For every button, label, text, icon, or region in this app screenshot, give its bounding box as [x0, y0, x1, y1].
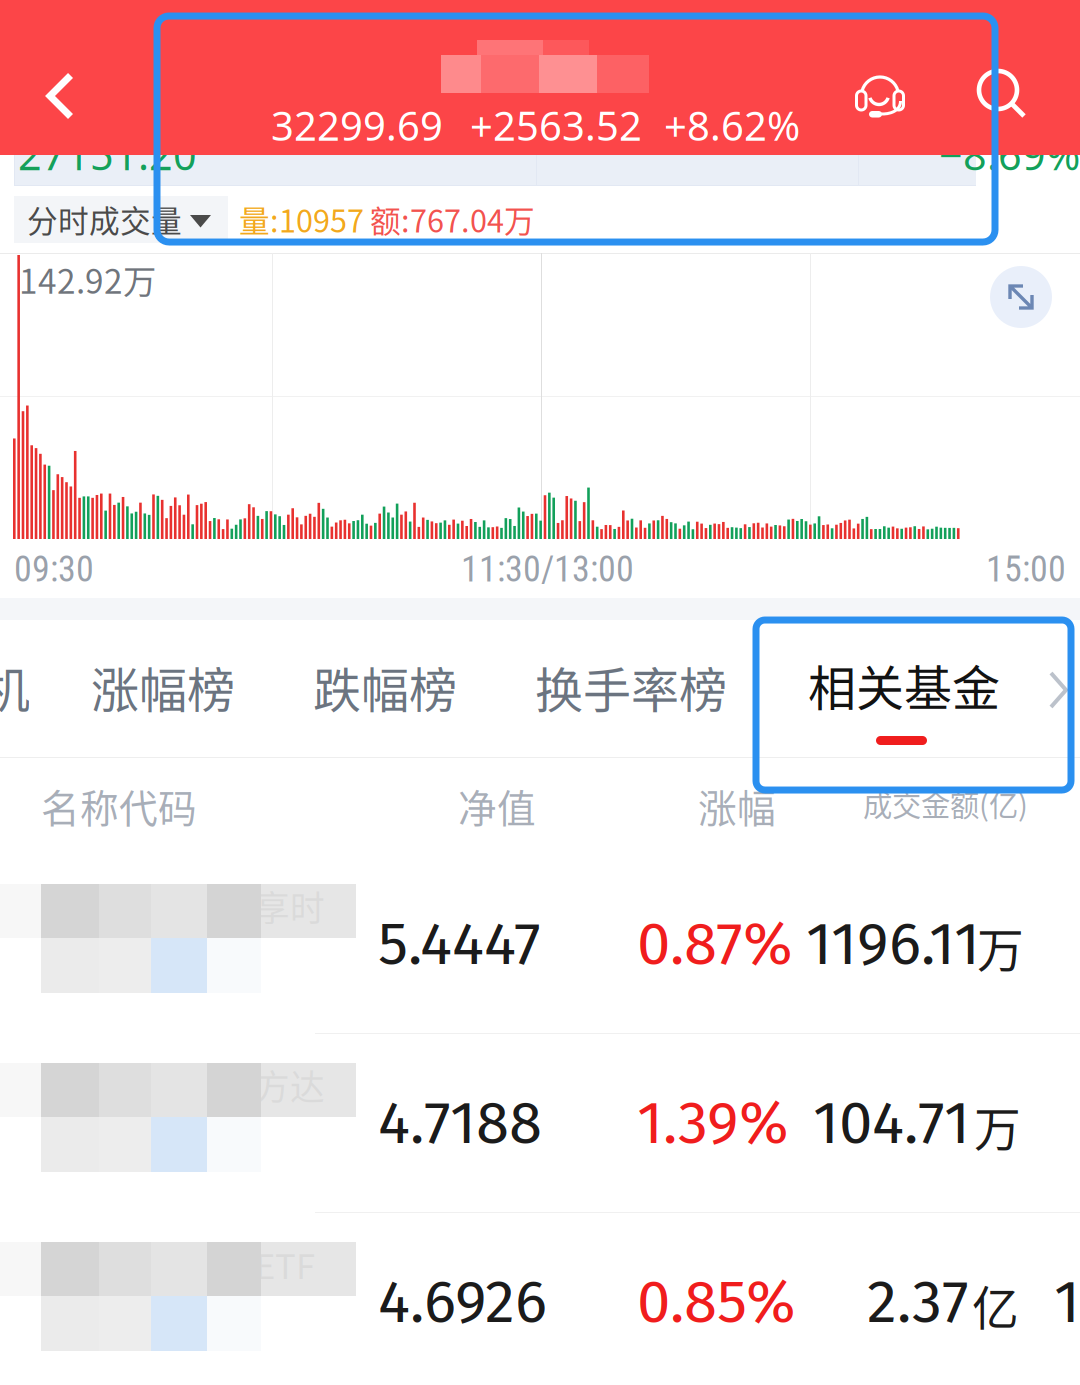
staticText: 1.39% — [637, 1087, 789, 1159]
staticText: 4.6926 — [378, 1266, 547, 1338]
button[interactable] — [0, 1041, 1080, 1220]
button[interactable]: 换手率榜 — [513, 620, 745, 757]
staticText: 5.4447 — [378, 908, 541, 980]
staticText: 1196.11 — [806, 908, 980, 980]
button[interactable]: Search — [952, 44, 1052, 144]
staticText: ETF — [255, 1239, 315, 1289]
staticText: 名称代码 — [41, 778, 197, 834]
staticText: 净值 — [458, 778, 536, 834]
staticText: 142.92万 — [19, 255, 156, 303]
staticText: 享时 — [255, 881, 325, 931]
staticText: 万 — [974, 1092, 1021, 1160]
staticText: 0.85% — [637, 1266, 796, 1338]
staticText: 方达 — [255, 1060, 325, 1110]
staticText: 分时成交量 — [27, 197, 182, 241]
staticText: +2563.52 — [470, 98, 642, 152]
button[interactable]: 跌幅榜 — [291, 620, 477, 757]
staticText: 机 — [0, 652, 30, 721]
staticText: −8.69% — [939, 126, 1080, 182]
staticText: 换手率榜 — [535, 652, 727, 721]
staticText: 涨幅榜 — [91, 652, 235, 721]
button[interactable] — [0, 1220, 1080, 1385]
staticText: 11:30/13:00 — [461, 548, 634, 590]
staticText: 2.37 — [867, 1266, 969, 1338]
button[interactable]: Back — [10, 46, 110, 146]
staticText: 相关基金 — [808, 650, 1000, 719]
staticText: 15:00 — [986, 548, 1066, 590]
staticText: 额:767.04万 — [370, 197, 535, 241]
staticText: 0.87% — [637, 908, 793, 980]
button[interactable] — [0, 862, 1080, 1041]
staticText: 亿 — [972, 1271, 1019, 1339]
staticText: 09:30 — [14, 548, 94, 590]
staticText: 32299.69 — [271, 98, 443, 152]
button[interactable]: Full screen chart — [990, 266, 1052, 328]
button[interactable]: 分时成交量 — [14, 196, 228, 243]
button[interactable]: Customer service — [830, 47, 930, 147]
staticText: 1 — [1054, 1266, 1080, 1338]
staticText: 27151.20 — [18, 126, 197, 182]
staticText: 成交金额(亿) — [863, 782, 1028, 824]
staticText: 跌幅榜 — [313, 652, 457, 721]
staticText: 4.7188 — [378, 1087, 542, 1159]
staticText: 量:10957 — [239, 197, 364, 241]
staticText: 104.71 — [813, 1087, 970, 1159]
staticText: +8.62% — [664, 98, 800, 152]
staticText: 涨幅 — [698, 778, 776, 834]
staticText: 万 — [977, 913, 1024, 981]
button[interactable]: 涨幅榜 — [69, 620, 255, 757]
button[interactable]: 相关基金 — [788, 620, 1016, 757]
